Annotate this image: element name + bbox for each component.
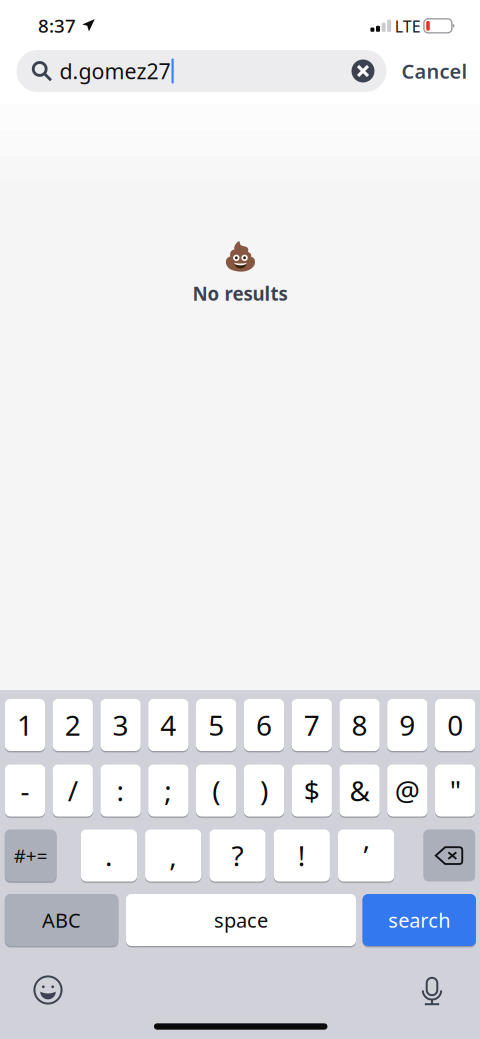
staticText: 8: [351, 706, 367, 744]
staticText: #+=: [14, 843, 48, 868]
button[interactable]: 8: [339, 698, 380, 752]
button[interactable]: Clear text: [351, 59, 374, 82]
staticText: &: [349, 772, 369, 809]
button[interactable]: ;: [148, 763, 188, 817]
staticText: /: [68, 772, 78, 809]
button[interactable]: Cancel: [391, 50, 477, 92]
staticText: ,: [169, 837, 177, 874]
button[interactable]: Dictate: [418, 975, 446, 1007]
staticText: 1: [17, 706, 33, 744]
button[interactable]: 5: [196, 698, 236, 752]
button[interactable]: 2: [53, 698, 93, 752]
button[interactable]: &: [339, 763, 380, 817]
staticText: 9: [399, 706, 415, 744]
staticText: 5: [208, 706, 224, 744]
button[interactable]: ?: [209, 828, 266, 882]
staticText: !: [298, 837, 306, 874]
staticText: search: [388, 907, 450, 933]
button[interactable]: @: [387, 763, 427, 817]
staticText: Cancel: [401, 58, 467, 84]
staticText: -: [20, 772, 29, 809]
button[interactable]: $: [292, 763, 332, 817]
staticText: ): [260, 772, 268, 809]
button[interactable]: 7: [292, 698, 332, 752]
staticText: 7: [304, 706, 320, 744]
button[interactable]: ": [435, 763, 475, 817]
button[interactable]: ,: [145, 828, 201, 882]
staticText: 6: [256, 706, 272, 744]
staticText: d.gomez27: [59, 57, 170, 85]
staticText: 0: [447, 706, 463, 744]
button[interactable]: search: [362, 893, 476, 947]
staticText: ?: [231, 837, 243, 874]
button[interactable]: !: [274, 828, 330, 882]
staticText: 4: [160, 706, 176, 744]
staticText: $: [304, 772, 320, 809]
button[interactable]: 0: [435, 698, 475, 752]
staticText: @: [395, 772, 420, 809]
button[interactable]: .: [81, 828, 137, 882]
staticText: 8:37: [38, 13, 76, 38]
button[interactable]: space: [126, 893, 356, 947]
staticText: :: [116, 772, 124, 809]
staticText: .: [105, 837, 113, 874]
button[interactable]: (: [196, 763, 236, 817]
staticText: 3: [112, 706, 128, 744]
button[interactable]: Delete: [423, 829, 475, 881]
staticText: 2: [65, 706, 81, 744]
button[interactable]: /: [53, 763, 93, 817]
staticText: 💩: [222, 240, 257, 272]
button[interactable]: 6: [244, 698, 284, 752]
button[interactable]: 1: [5, 698, 45, 752]
button[interactable]: ABC: [5, 893, 118, 947]
button[interactable]: ’: [338, 828, 394, 882]
button[interactable]: Emoji keyboard: [31, 973, 65, 1007]
staticText: ": [450, 772, 461, 809]
staticText: ’: [364, 837, 369, 874]
button[interactable]: ): [244, 763, 284, 817]
staticText: ;: [164, 772, 172, 809]
staticText: ABC: [42, 907, 81, 933]
button[interactable]: 9: [387, 698, 427, 752]
button[interactable]: 4: [148, 698, 188, 752]
staticText: No results: [192, 281, 287, 306]
staticText: space: [214, 907, 268, 933]
staticText: (: [212, 772, 220, 809]
button[interactable]: #+=: [5, 828, 56, 882]
button[interactable]: -: [5, 763, 45, 817]
button[interactable]: :: [100, 763, 141, 817]
button[interactable]: 3: [100, 698, 141, 752]
staticText: LTE: [395, 16, 421, 37]
